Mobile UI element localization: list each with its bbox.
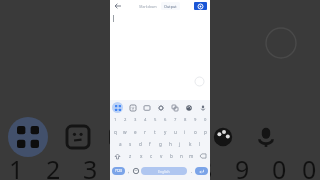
staticText: o — [194, 129, 197, 135]
button[interactable]: d — [135, 138, 145, 150]
button[interactable]: Output — [161, 2, 180, 10]
button[interactable]: q — [110, 126, 120, 138]
button[interactable]: f — [145, 138, 155, 150]
staticText: 0 — [272, 152, 287, 180]
staticText: m — [189, 153, 194, 159]
button[interactable]: 4 — [140, 114, 150, 126]
button[interactable]: Voice input — [246, 117, 286, 157]
button[interactable]: l — [195, 138, 205, 150]
button[interactable]: GIF — [100, 117, 140, 157]
button[interactable]: English — [141, 167, 187, 175]
staticText: , — [128, 168, 130, 175]
staticText: . — [191, 168, 193, 175]
staticText: c — [150, 153, 153, 159]
button[interactable]: 7 — [170, 114, 180, 126]
staticText: 1 — [9, 152, 24, 180]
button[interactable]: w — [120, 126, 130, 138]
button[interactable]: Enter — [195, 167, 208, 175]
staticText: s — [129, 141, 132, 147]
staticText: d — [139, 141, 142, 147]
button[interactable]: Settings — [155, 102, 166, 113]
button[interactable]: u — [170, 126, 180, 138]
button[interactable]: p — [200, 126, 210, 138]
staticText: 8 — [198, 152, 213, 180]
staticText: q — [114, 129, 117, 135]
button[interactable]: 5 — [150, 114, 160, 126]
button[interactable]: Stickers — [127, 102, 138, 113]
button[interactable]: g — [155, 138, 165, 150]
staticText: English — [158, 169, 170, 174]
button[interactable]: GIF — [141, 102, 152, 113]
button[interactable]: Emoji — [132, 167, 140, 175]
staticText: r — [144, 129, 146, 135]
button[interactable]: Comma — [125, 164, 132, 178]
staticText: l — [199, 141, 201, 147]
button[interactable]: x — [136, 150, 146, 162]
staticText: 9 — [194, 117, 197, 123]
staticText: w — [123, 129, 127, 135]
button[interactable]: v — [156, 150, 166, 162]
staticText: t — [154, 129, 156, 135]
staticText: Markdown — [139, 4, 157, 9]
button[interactable]: Refresh — [194, 2, 207, 10]
button[interactable]: k — [185, 138, 195, 150]
button[interactable]: Stickers — [58, 117, 98, 157]
button[interactable]: 8 — [180, 114, 190, 126]
staticText: f — [149, 141, 151, 147]
button[interactable]: c — [146, 150, 156, 162]
button[interactable]: 6 — [160, 114, 170, 126]
button[interactable]: Apps grid — [112, 102, 123, 113]
button[interactable]: Voice input — [197, 102, 208, 113]
button[interactable]: y — [160, 126, 170, 138]
button[interactable]: o — [190, 126, 200, 138]
staticText: x — [140, 153, 143, 159]
button[interactable]: 3 — [130, 114, 140, 126]
staticText: z — [129, 153, 132, 159]
staticText: 2 — [124, 117, 127, 123]
button[interactable]: 1 — [110, 114, 120, 126]
button[interactable]: Backspace — [196, 150, 210, 162]
button[interactable]: z — [125, 150, 136, 162]
button[interactable]: Back — [113, 1, 123, 11]
button[interactable]: Translate — [169, 102, 180, 113]
staticText: k — [189, 141, 192, 147]
staticText: v — [160, 153, 163, 159]
staticText: 3 — [83, 152, 98, 180]
button[interactable]: t — [150, 126, 160, 138]
button[interactable]: Markdown — [137, 3, 159, 10]
button[interactable]: Themes — [183, 102, 194, 113]
staticText: 5 — [154, 117, 157, 123]
staticText: u — [174, 129, 177, 135]
button[interactable]: a — [115, 138, 125, 150]
staticText: Output — [164, 4, 177, 9]
button[interactable]: Period — [188, 164, 195, 178]
button[interactable]: 0 — [200, 114, 210, 126]
staticText: 8 — [184, 117, 187, 123]
staticText: a — [119, 141, 122, 147]
button[interactable]: r — [140, 126, 150, 138]
button[interactable]: 9 — [190, 114, 200, 126]
staticText: 1 — [114, 117, 117, 123]
button[interactable]: 2 — [120, 114, 130, 126]
button[interactable]: Apps grid — [8, 117, 48, 157]
staticText: 6 — [164, 117, 167, 123]
button[interactable]: Shift — [110, 150, 125, 162]
staticText: 0 — [204, 117, 207, 123]
staticText: h — [169, 141, 172, 147]
staticText: j — [179, 141, 181, 147]
staticText: 7 — [174, 117, 177, 123]
button[interactable]: h — [165, 138, 175, 150]
button[interactable]: i — [180, 126, 190, 138]
button[interactable]: ?123 — [112, 167, 125, 175]
button[interactable]: b — [166, 150, 176, 162]
button[interactable]: s — [125, 138, 135, 150]
button[interactable]: m — [186, 150, 196, 162]
button[interactable]: Themes — [203, 117, 243, 157]
staticText: 2 — [46, 152, 61, 180]
staticText: n — [180, 153, 183, 159]
button[interactable]: e — [130, 126, 140, 138]
button[interactable]: n — [176, 150, 186, 162]
staticText: 9 — [235, 152, 250, 180]
staticText: g — [159, 141, 162, 147]
button[interactable]: j — [175, 138, 185, 150]
